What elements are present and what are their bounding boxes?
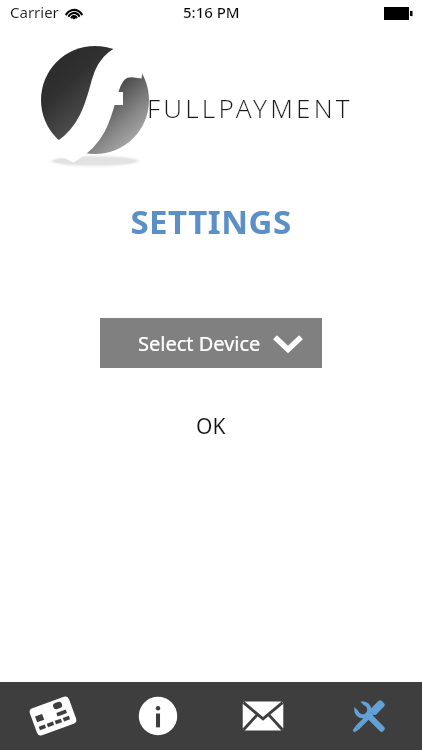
button[interactable]: Settings [316,682,422,750]
staticText: Select Device [138,330,261,357]
button[interactable]: Messages [210,682,316,750]
staticText: FULLPAYMENT [147,90,353,125]
button[interactable]: Cards [0,682,105,750]
staticText: OK [196,412,226,441]
button[interactable]: OK [178,408,244,445]
button[interactable]: Information [105,682,210,750]
staticText: 5:16 PM [183,2,240,22]
staticText: Carrier [10,2,59,22]
button[interactable]: Select Device [100,318,322,368]
staticText: SETTINGS [0,199,422,244]
